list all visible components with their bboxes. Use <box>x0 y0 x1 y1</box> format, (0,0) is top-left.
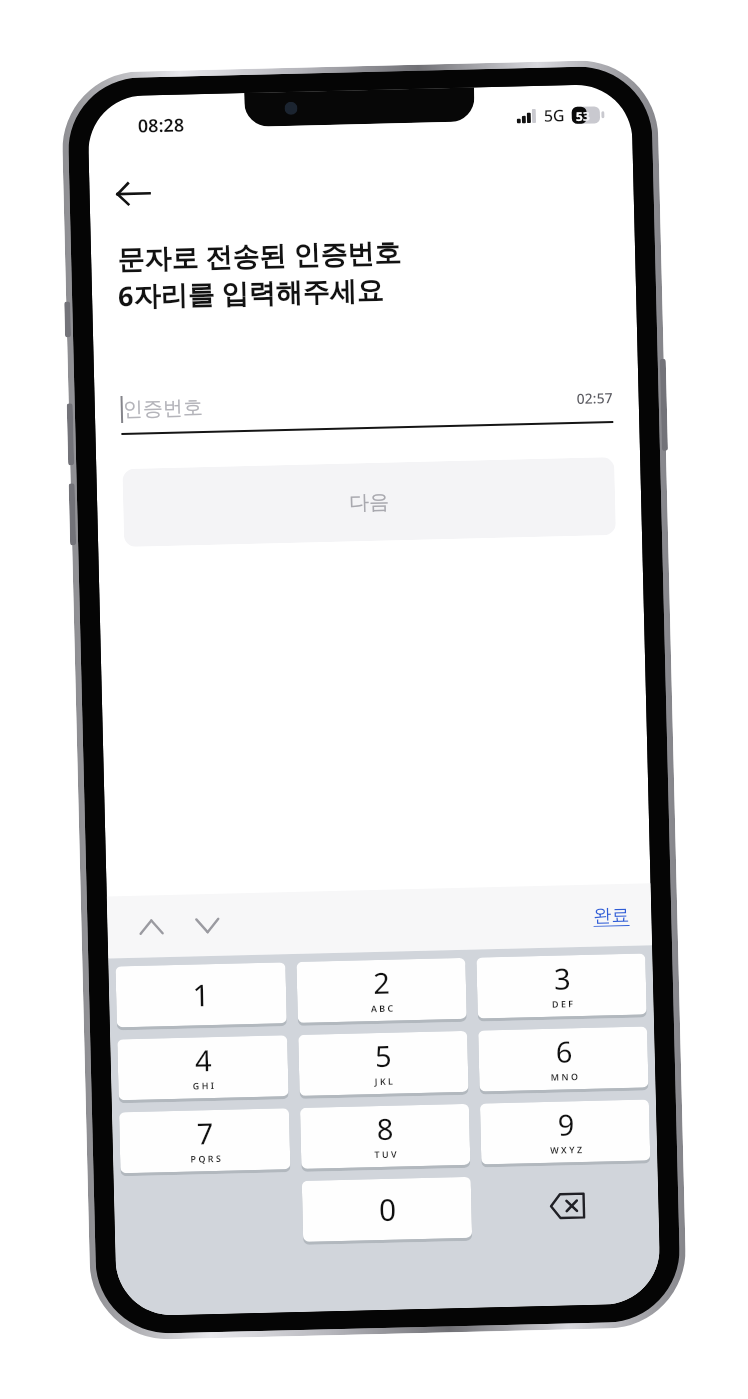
button[interactable]: 0 <box>302 1177 472 1242</box>
button[interactable]: 다음 <box>122 457 616 547</box>
staticText: 0 <box>378 1189 397 1230</box>
button[interactable]: Previous field <box>129 904 174 949</box>
staticText: 3 <box>583 108 590 124</box>
button[interactable]: 4 <box>117 1035 289 1100</box>
staticText: W X Y Z <box>550 1143 582 1156</box>
button[interactable]: Next field <box>185 903 230 948</box>
staticText: 4 <box>194 1040 212 1079</box>
staticText: M N O <box>550 1070 578 1083</box>
button[interactable]: 8 <box>300 1104 470 1169</box>
staticText: A B C <box>370 1002 394 1014</box>
button[interactable]: 완료 <box>593 904 630 928</box>
staticText: 2 <box>372 963 390 1002</box>
staticText: 문자로 전송된 인증번호 <box>117 233 402 277</box>
button[interactable]: 1 <box>115 962 287 1027</box>
staticText: 5 <box>576 108 583 124</box>
staticText: D E F <box>551 997 574 1010</box>
button[interactable]: 9 <box>480 1099 650 1164</box>
staticText: P Q R S <box>190 1152 221 1165</box>
staticText: 다음 <box>349 490 389 516</box>
staticText: 7 <box>196 1113 214 1152</box>
staticText: 6자리를 입력해주세요 <box>118 271 384 314</box>
staticText: J K L <box>374 1075 393 1087</box>
button[interactable]: 5 <box>298 1031 469 1096</box>
button[interactable]: Back <box>105 165 162 222</box>
staticText: 5G <box>543 104 565 127</box>
button[interactable]: 6 <box>478 1026 648 1091</box>
staticText: G H I <box>192 1079 214 1091</box>
staticText: 1 <box>192 974 211 1015</box>
button[interactable]: Delete <box>482 1172 652 1238</box>
button[interactable]: 인증번호 <box>120 384 613 435</box>
staticText: 인증번호 <box>122 395 203 422</box>
staticText: 완료 <box>593 904 630 928</box>
staticText: 8 <box>376 1109 394 1148</box>
staticText: 02:57 <box>576 388 613 408</box>
staticText: T U V <box>374 1148 397 1160</box>
staticText: 3 <box>553 958 571 998</box>
button[interactable]: 7 <box>119 1108 290 1173</box>
staticText: 9 <box>557 1104 575 1144</box>
staticText: 5 <box>374 1036 392 1075</box>
button[interactable]: 3 <box>476 953 647 1018</box>
staticText: 08:28 <box>138 112 185 139</box>
staticText: 6 <box>555 1031 573 1071</box>
button[interactable]: 2 <box>296 958 467 1023</box>
